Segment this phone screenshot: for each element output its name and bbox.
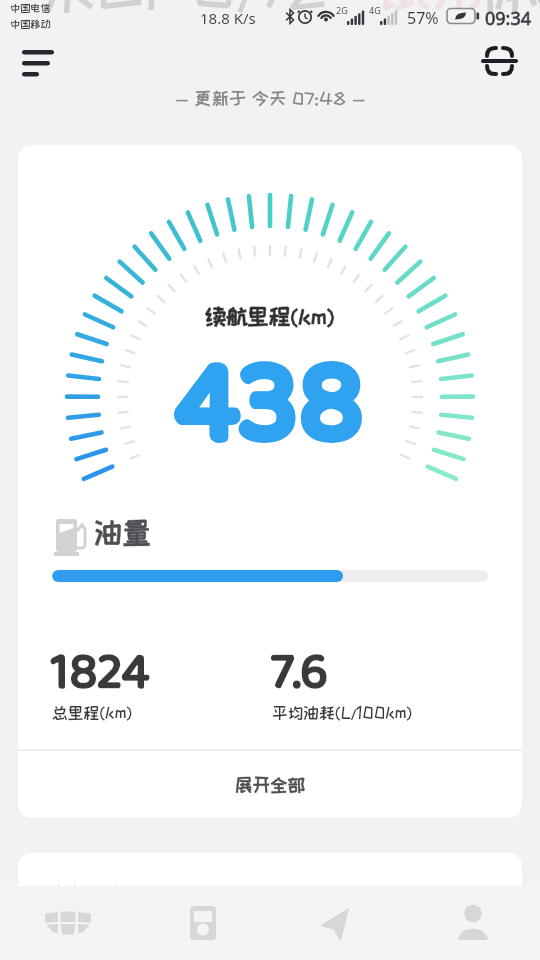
- staticText: 2G: [336, 4, 348, 16]
- staticText: 7.6: [271, 633, 328, 713]
- staticText: 续航里程(km): [205, 305, 335, 328]
- staticText: 续航里程(km): [205, 305, 335, 328]
- button[interactable]: [0, 886, 135, 960]
- button[interactable]: [405, 886, 540, 960]
- staticText: 18.8 K/s: [200, 8, 256, 28]
- staticText: 展开全部: [235, 775, 305, 794]
- staticText: 4G: [369, 4, 381, 16]
- staticText: 试用: [380, 0, 484, 14]
- staticText: 米CPU/72: [40, 0, 327, 16]
- staticText: 1824: [51, 633, 150, 713]
- button[interactable]: [270, 886, 405, 960]
- staticText: 油量: [94, 517, 152, 548]
- staticText: 438: [176, 315, 365, 496]
- button[interactable]: 展开全部: [18, 751, 522, 818]
- staticText: 09:34: [485, 6, 532, 31]
- staticText: 展开全部: [235, 775, 305, 794]
- staticText: — 更新于 今天 07:48 —: [175, 89, 366, 108]
- staticText: 7.6: [271, 633, 328, 713]
- staticText: 57%: [407, 7, 439, 29]
- staticText: 体验: [480, 0, 540, 16]
- button[interactable]: [14, 42, 58, 86]
- staticText: 438: [176, 315, 365, 496]
- staticText: 平均油耗(L/100km): [272, 704, 413, 721]
- staticText: 中国电信: [10, 2, 51, 13]
- button[interactable]: [482, 44, 522, 84]
- staticText: 09:34: [485, 6, 532, 31]
- staticText: 车辆状况: [52, 883, 126, 903]
- staticText: 1824: [51, 633, 150, 713]
- staticText: 中国移动: [10, 18, 51, 29]
- button[interactable]: [135, 886, 270, 960]
- staticText: 总里程(km): [52, 704, 133, 721]
- staticText: 油量: [94, 517, 152, 548]
